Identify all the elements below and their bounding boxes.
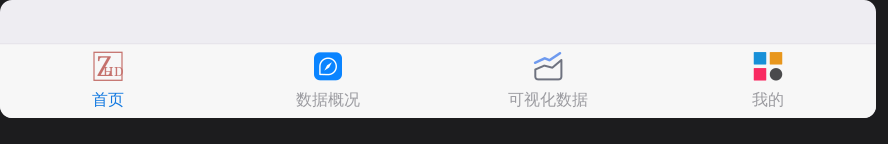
button[interactable]: Z — [0, 44, 218, 119]
staticText: HD — [103, 62, 124, 80]
button[interactable]: 数据概况 — [218, 44, 438, 119]
staticText: 数据概况 — [296, 90, 360, 109]
staticText: 我的 — [752, 90, 784, 109]
staticText: Z — [96, 48, 112, 84]
staticText: 首页 — [92, 90, 124, 109]
button[interactable]: 我的 — [658, 44, 878, 119]
button[interactable]: 可视化数据 — [438, 44, 658, 119]
staticText: 可视化数据 — [508, 90, 588, 109]
